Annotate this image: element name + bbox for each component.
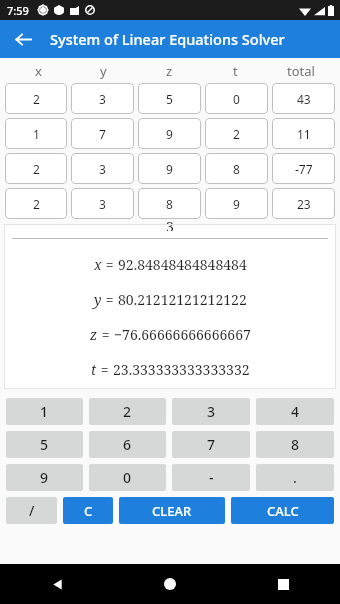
button[interactable]: CALC [231, 497, 334, 524]
staticText: 3 [99, 196, 106, 212]
staticText: 8 [166, 196, 173, 212]
staticText: 2 [123, 402, 132, 421]
staticText: 3 [99, 161, 106, 177]
button[interactable]: - [172, 464, 250, 491]
staticText: 92.84848484848484 [118, 255, 247, 274]
staticText: z [90, 325, 98, 344]
button[interactable]: 7 [71, 118, 134, 149]
button[interactable]: 9 [6, 464, 83, 491]
button[interactable]: 8 [205, 153, 268, 184]
button[interactable]: 9 [205, 188, 268, 219]
staticText: = [102, 290, 118, 309]
staticText: 43 [297, 91, 311, 107]
staticText: 8 [233, 161, 240, 177]
staticText: y [100, 62, 107, 80]
staticText: 2 [33, 161, 40, 177]
button[interactable]: 6 [89, 431, 166, 458]
staticText: / [29, 501, 35, 520]
staticText: 3 [166, 217, 174, 231]
staticText: CALC [267, 502, 299, 520]
button[interactable]: Back [40, 567, 74, 601]
button[interactable]: 5 [6, 431, 83, 458]
button[interactable]: -77 [272, 153, 335, 184]
button[interactable]: Back [8, 24, 38, 54]
staticText: 9 [40, 468, 49, 487]
staticText: = [98, 325, 114, 344]
button[interactable]: 1 [5, 118, 67, 149]
staticText: 6 [123, 435, 132, 454]
staticText: total [287, 62, 315, 80]
button[interactable]: 43 [272, 83, 335, 114]
staticText: 5 [166, 91, 173, 107]
button[interactable]: 1 [6, 398, 83, 425]
staticText: - [209, 468, 214, 487]
button[interactable]: 5 [138, 83, 201, 114]
button[interactable]: 3 [71, 153, 134, 184]
button[interactable]: 3 [71, 188, 134, 219]
staticText: y [94, 290, 102, 309]
staticText: x [35, 62, 42, 80]
staticText: -77 [295, 161, 313, 177]
button[interactable]: 2 [89, 398, 166, 425]
staticText: System of Linear Equations Solver [50, 29, 285, 49]
staticText: 0 [123, 468, 132, 487]
button[interactable]: 23 [272, 188, 335, 219]
staticText: 4 [291, 402, 300, 421]
button[interactable]: 2 [5, 83, 67, 114]
staticText: 23.333333333333332 [113, 360, 250, 379]
staticText: CLEAR [152, 502, 192, 520]
staticText: 80.21212121212122 [118, 290, 247, 309]
staticText: t [233, 62, 238, 80]
button[interactable]: 7 [172, 431, 250, 458]
staticText: 9 [166, 126, 173, 142]
staticText: = [102, 255, 118, 274]
button[interactable]: 2 [5, 153, 67, 184]
button[interactable]: 0 [89, 464, 166, 491]
staticText: 2 [33, 91, 40, 107]
staticText: −76.66666666666667 [114, 325, 251, 344]
button[interactable]: 2 [5, 188, 67, 219]
staticText: 23 [297, 196, 311, 212]
staticText: 7 [207, 435, 216, 454]
staticText: 9 [166, 161, 173, 177]
staticText: 7 [99, 126, 106, 142]
staticText: z [166, 62, 173, 80]
staticText: . [293, 468, 297, 487]
staticText: C [84, 502, 93, 520]
button[interactable]: 4 [256, 398, 334, 425]
button[interactable]: 9 [138, 118, 201, 149]
button[interactable]: C [63, 497, 113, 524]
staticText: 1 [40, 402, 49, 421]
button[interactable]: 3 [71, 83, 134, 114]
staticText: 1 [33, 126, 40, 142]
button[interactable]: 11 [272, 118, 335, 149]
staticText: 0 [233, 91, 240, 107]
staticText: = [97, 360, 113, 379]
staticText: 11 [297, 126, 311, 142]
button[interactable]: . [256, 464, 334, 491]
staticText: t [91, 360, 97, 379]
staticText: 8 [291, 435, 300, 454]
button[interactable]: 0 [205, 83, 268, 114]
staticText: 5 [40, 435, 49, 454]
staticText: 3 [99, 91, 106, 107]
button[interactable]: 3 [172, 398, 250, 425]
button[interactable]: Recents [266, 567, 300, 601]
staticText: x [94, 255, 102, 274]
button[interactable]: CLEAR [119, 497, 225, 524]
button[interactable]: 9 [138, 153, 201, 184]
button[interactable]: 2 [205, 118, 268, 149]
button[interactable]: / [6, 497, 57, 524]
staticText: 2 [33, 196, 40, 212]
staticText: 9 [233, 196, 240, 212]
staticText: 3 [207, 402, 216, 421]
button[interactable]: 8 [256, 431, 334, 458]
button[interactable]: Home [153, 567, 187, 601]
button[interactable]: 8 [138, 188, 201, 219]
staticText: 7:59 [7, 3, 29, 18]
staticText: 2 [233, 126, 240, 142]
